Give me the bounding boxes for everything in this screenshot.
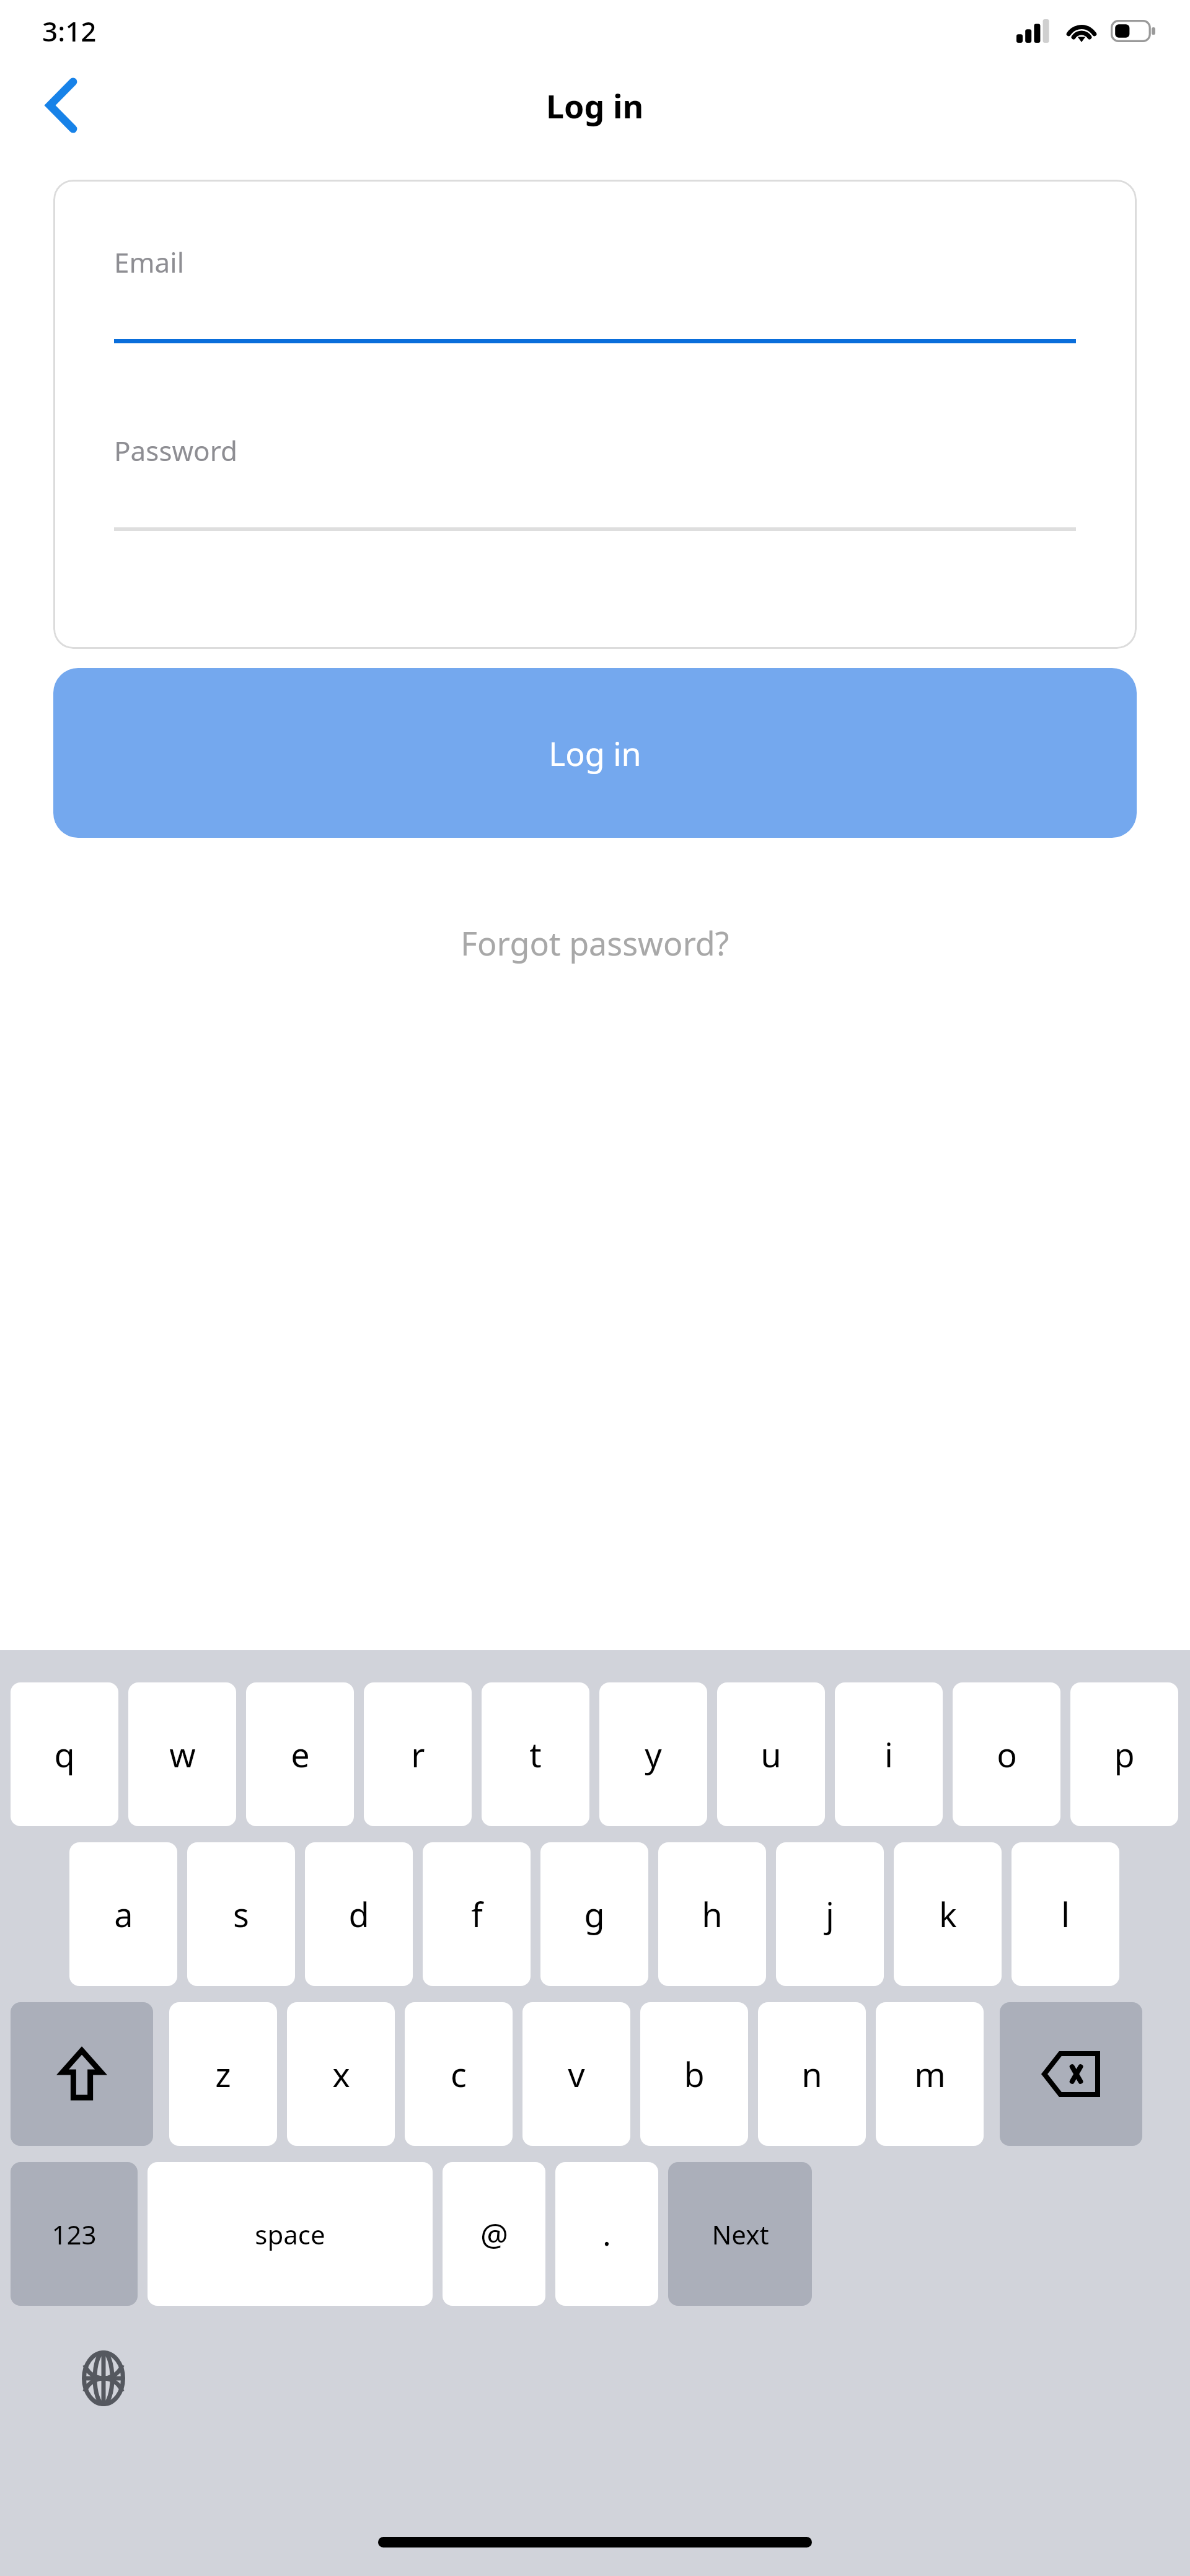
button[interactable]: f	[423, 1842, 531, 1986]
button[interactable]: e	[246, 1682, 354, 1826]
staticText: e	[291, 1731, 310, 1777]
button[interactable]: Backspace	[1000, 2002, 1142, 2146]
staticText: o	[997, 1731, 1017, 1777]
staticText: space	[255, 2217, 325, 2252]
button[interactable]: .	[555, 2162, 658, 2306]
staticText: Log in	[546, 84, 644, 128]
staticText: z	[215, 2051, 231, 2097]
button[interactable]: h	[658, 1842, 766, 1986]
staticText: s	[233, 1891, 249, 1937]
button[interactable]: k	[894, 1842, 1002, 1986]
button[interactable]: l	[1011, 1842, 1119, 1986]
staticText: x	[332, 2051, 350, 2097]
staticText: j	[826, 1891, 834, 1937]
staticText: m	[914, 2051, 946, 2097]
button[interactable]: Log in	[53, 668, 1137, 838]
button[interactable]: n	[758, 2002, 866, 2146]
staticText: d	[348, 1891, 369, 1937]
button[interactable]: r	[364, 1682, 472, 1826]
staticText: l	[1061, 1891, 1070, 1937]
staticText: .	[602, 2213, 611, 2255]
button[interactable]: w	[128, 1682, 236, 1826]
button[interactable]: c	[405, 2002, 513, 2146]
button[interactable]: Email	[114, 244, 184, 281]
staticText: n	[801, 2051, 822, 2097]
staticText: a	[114, 1891, 133, 1937]
staticText: f	[471, 1891, 483, 1937]
button[interactable]: o	[953, 1682, 1060, 1826]
staticText: u	[760, 1731, 782, 1777]
staticText: Next	[712, 2217, 769, 2252]
staticText: i	[884, 1731, 893, 1777]
staticText: 123	[51, 2217, 97, 2252]
staticText: Log in	[549, 731, 641, 775]
staticText: c	[451, 2051, 467, 2097]
button[interactable]: b	[640, 2002, 748, 2146]
staticText: r	[411, 1731, 425, 1777]
staticText: k	[939, 1891, 957, 1937]
button[interactable]: space	[148, 2162, 433, 2306]
staticText: @	[480, 2213, 508, 2255]
button[interactable]: z	[169, 2002, 277, 2146]
staticText: q	[54, 1731, 75, 1777]
button[interactable]: v	[522, 2002, 630, 2146]
button[interactable]: x	[287, 2002, 395, 2146]
button[interactable]: Forgot password?	[448, 913, 742, 972]
staticText: b	[684, 2051, 705, 2097]
button[interactable]: Password	[114, 432, 238, 469]
button[interactable]: m	[876, 2002, 984, 2146]
staticText: p	[1114, 1731, 1135, 1777]
button[interactable]: Back	[27, 71, 95, 139]
staticText: Forgot password?	[461, 921, 729, 965]
staticText: 3:12	[42, 12, 97, 50]
button[interactable]: Shift	[11, 2002, 153, 2146]
staticText: v	[568, 2051, 585, 2097]
staticText: t	[529, 1731, 542, 1777]
button[interactable]: s	[187, 1842, 295, 1986]
button[interactable]: i	[835, 1682, 943, 1826]
button[interactable]: j	[776, 1842, 884, 1986]
button[interactable]: p	[1070, 1682, 1178, 1826]
staticText: y	[645, 1731, 662, 1777]
button[interactable]: Change keyboard	[69, 2344, 138, 2412]
button[interactable]: y	[599, 1682, 707, 1826]
button[interactable]: u	[717, 1682, 825, 1826]
button[interactable]: a	[69, 1842, 177, 1986]
button[interactable]: g	[540, 1842, 648, 1986]
button[interactable]: Next	[668, 2162, 812, 2306]
button[interactable]: @	[443, 2162, 545, 2306]
staticText: w	[169, 1731, 196, 1777]
button[interactable]: t	[482, 1682, 589, 1826]
button[interactable]: q	[11, 1682, 118, 1826]
staticText: g	[584, 1891, 605, 1937]
staticText: h	[702, 1891, 723, 1937]
button[interactable]: 123	[11, 2162, 138, 2306]
button[interactable]: d	[305, 1842, 413, 1986]
